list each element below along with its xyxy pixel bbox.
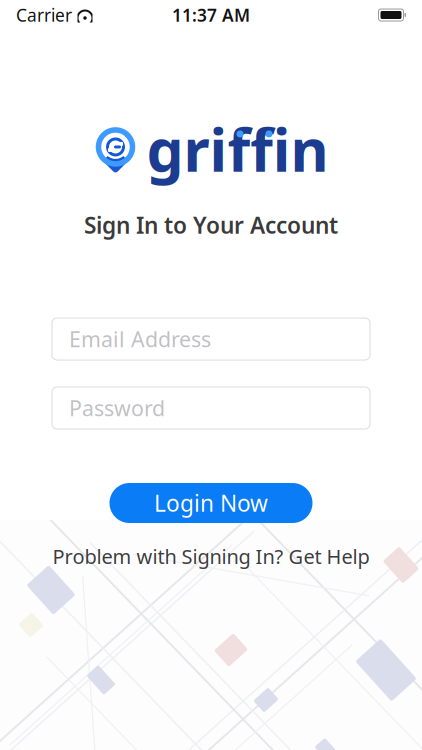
staticText: Password	[69, 394, 165, 422]
staticText: griffin	[146, 110, 328, 188]
staticText: Email Address	[69, 325, 211, 353]
staticText: Problem with Signing In? Get Help	[52, 543, 369, 570]
button[interactable]: Login Now	[109, 483, 312, 523]
staticText: Login Now	[154, 488, 268, 518]
staticText: Sign In to Your Account	[84, 210, 338, 240]
button[interactable]: Email Address	[52, 318, 370, 360]
button[interactable]: Password	[52, 387, 370, 429]
staticText: Carrier	[16, 3, 72, 26]
staticText: 11:37 AM	[172, 3, 250, 26]
button[interactable]: Problem with Signing In? Get Help	[42, 537, 379, 576]
